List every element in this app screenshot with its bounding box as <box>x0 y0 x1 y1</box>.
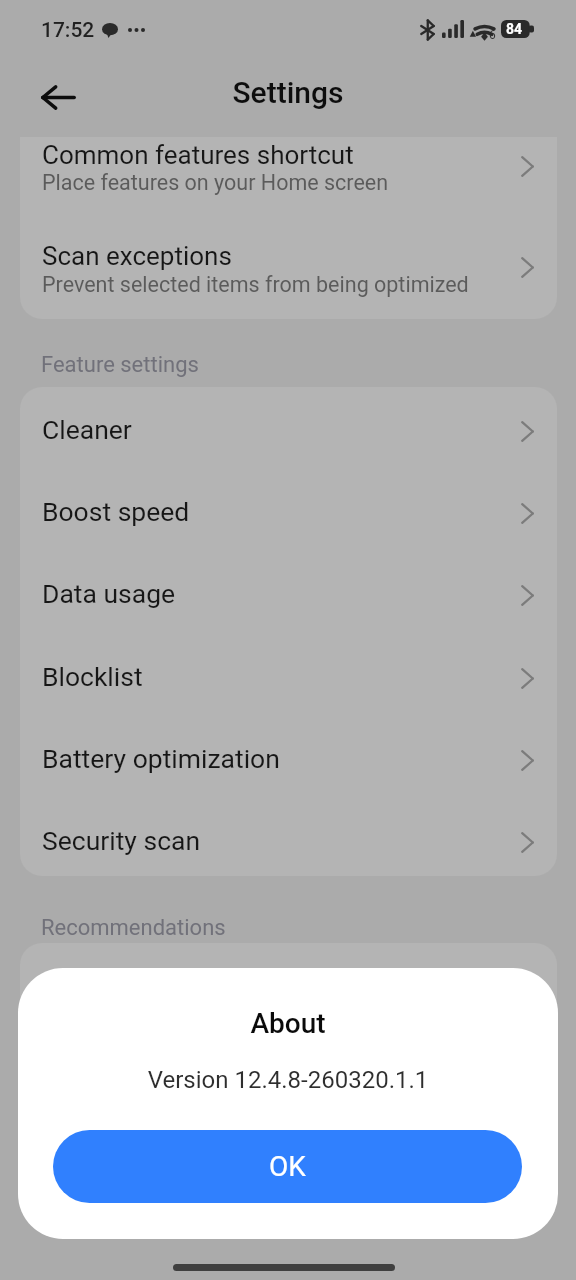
button[interactable]: Scan exceptions <box>20 218 557 300</box>
staticText: Version 12.4.8-260320.1.1 <box>18 1066 558 1094</box>
staticText: Battery optimization <box>42 743 280 774</box>
staticText: Data usage <box>42 578 176 609</box>
button[interactable]: Common features shortcut <box>20 117 557 199</box>
button[interactable]: Cleaner <box>20 391 557 473</box>
staticText: OK <box>269 1150 306 1183</box>
staticText: Cleaner <box>42 414 132 445</box>
button[interactable]: Back <box>32 71 84 123</box>
staticText: Blocklist <box>42 661 143 692</box>
button[interactable]: Blocklist <box>20 638 557 720</box>
button[interactable]: Security scan <box>20 802 557 884</box>
staticText: Security scan <box>42 825 201 856</box>
staticText: Scan exceptions <box>42 241 232 271</box>
staticText: Prevent selected items from being optimi… <box>42 272 469 297</box>
staticText: 17:52 <box>41 18 95 43</box>
staticText: Settings <box>0 75 576 110</box>
staticText: 84 <box>506 21 523 37</box>
button[interactable]: Battery optimization <box>20 720 557 802</box>
staticText: Boost speed <box>42 496 190 527</box>
staticText: Common features shortcut <box>42 140 354 170</box>
button[interactable]: Boost speed <box>20 473 557 555</box>
button[interactable]: OK <box>53 1130 522 1203</box>
staticText: Feature settings <box>41 352 199 378</box>
staticText: About <box>18 1007 558 1040</box>
button[interactable]: Data usage <box>20 555 557 637</box>
staticText: Place features on your Home screen <box>42 170 389 195</box>
staticText: Recommendations <box>41 915 226 941</box>
staticText: 6 <box>489 28 496 42</box>
